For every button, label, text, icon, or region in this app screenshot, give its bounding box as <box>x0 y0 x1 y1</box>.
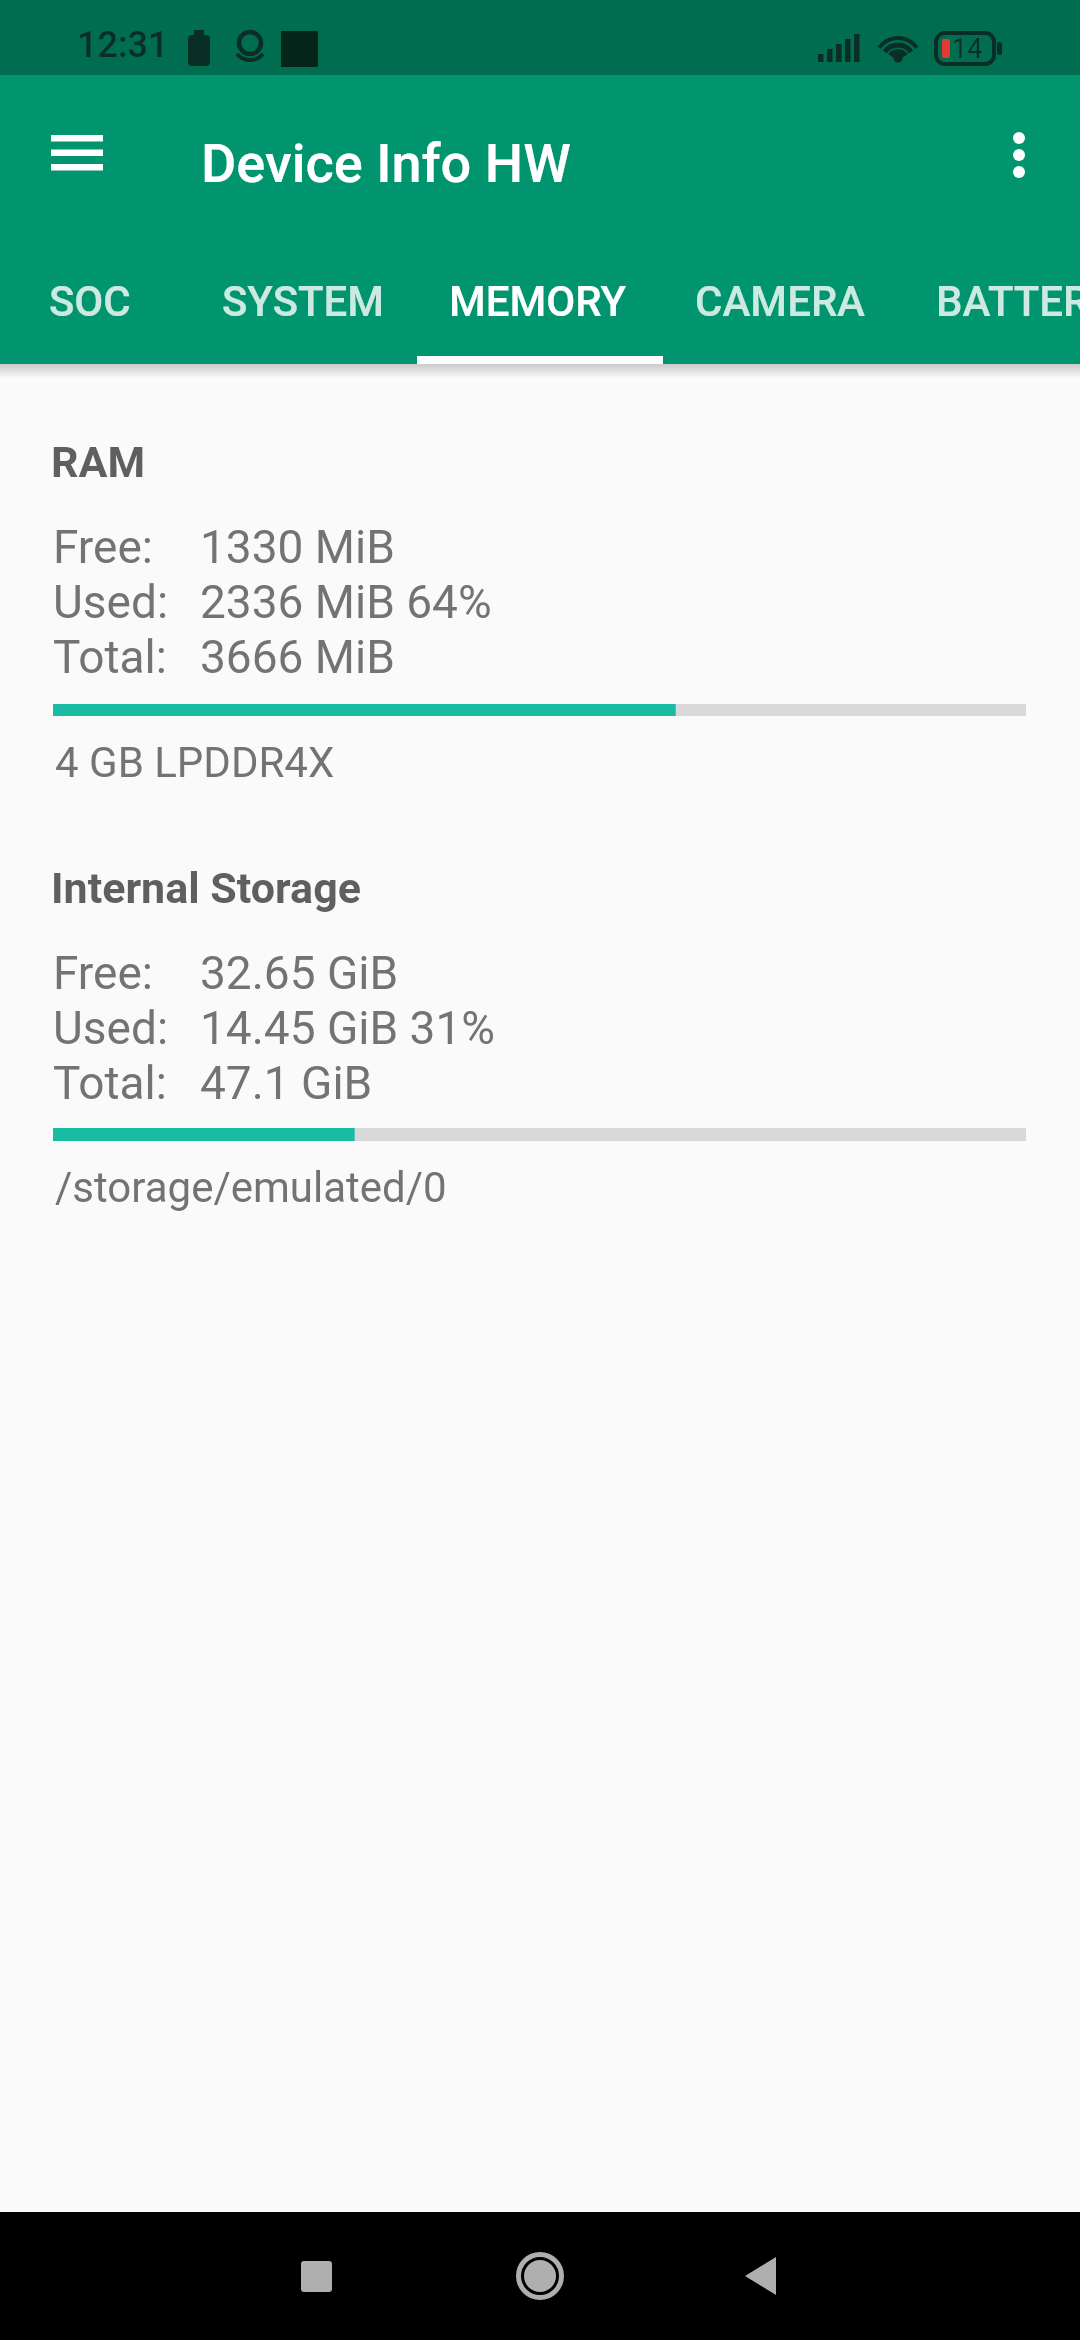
staticText: BATTERY <box>936 277 1080 325</box>
staticText: Used: <box>53 575 169 629</box>
staticText: RAM <box>51 437 146 487</box>
staticText: 4 GB LPDDR4X <box>55 738 335 787</box>
staticText: 2336 MiB 64% <box>200 575 492 629</box>
staticText: MEMORY <box>449 277 627 325</box>
staticText: 47.1 GiB <box>200 1056 373 1110</box>
button[interactable] <box>37 113 117 193</box>
button[interactable] <box>979 115 1059 195</box>
button[interactable]: SYSTEM <box>183 277 423 325</box>
button[interactable] <box>711 2226 811 2326</box>
staticText: Used: <box>53 1001 169 1055</box>
staticText: CAMERA <box>695 277 866 325</box>
staticText: Device Info HW <box>201 132 571 195</box>
staticText: Internal Storage <box>51 863 361 913</box>
staticText: 14.45 GiB 31% <box>200 1001 495 1055</box>
staticText: Total: <box>53 1056 167 1110</box>
button[interactable]: BATTERY <box>905 277 1080 325</box>
button[interactable]: MEMORY <box>418 277 658 325</box>
staticText: Total: <box>53 630 167 684</box>
staticText: Free: <box>53 946 153 1000</box>
staticText: 12:31 <box>77 24 169 66</box>
button[interactable] <box>266 2226 366 2326</box>
button[interactable]: CAMERA <box>660 277 900 325</box>
staticText: 1330 MiB <box>200 520 395 574</box>
staticText: 3666 MiB <box>200 630 395 684</box>
button[interactable]: SOC <box>0 277 210 325</box>
staticText: SYSTEM <box>222 277 385 325</box>
staticText: 14 <box>952 33 983 65</box>
staticText: /storage/emulated/0 <box>55 1163 447 1212</box>
staticText: SOC <box>49 277 131 325</box>
staticText: Free: <box>53 520 153 574</box>
staticText: 32.65 GiB <box>200 946 399 1000</box>
button[interactable] <box>490 2226 590 2326</box>
